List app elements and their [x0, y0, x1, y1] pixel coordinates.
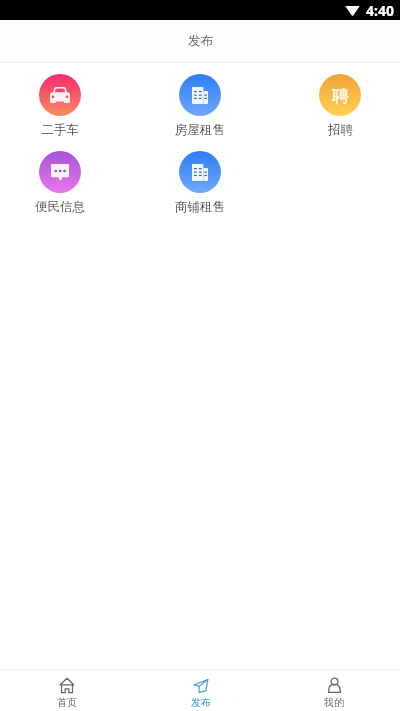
- staticText: 商铺租售: [175, 199, 225, 215]
- button[interactable]: 房屋租售: [150, 74, 250, 138]
- staticText: 二手车: [41, 122, 79, 138]
- button[interactable]: 商铺租售: [150, 151, 250, 215]
- staticText: 聘: [332, 86, 349, 107]
- staticText: 4:40: [366, 1, 394, 20]
- button[interactable]: 聘: [290, 74, 390, 138]
- staticText: 我的: [324, 696, 344, 709]
- staticText: 发布: [188, 33, 213, 49]
- staticText: 房屋租售: [175, 122, 225, 138]
- button[interactable]: 二手车: [10, 74, 110, 138]
- staticText: 首页: [57, 696, 77, 709]
- staticText: 招聘: [328, 122, 353, 138]
- button[interactable]: 首页 Home: [0, 674, 134, 709]
- button[interactable]: 便民信息: [10, 151, 110, 215]
- button[interactable]: 我的 Profile: [267, 674, 400, 709]
- staticText: 便民信息: [35, 199, 85, 215]
- staticText: 发布: [191, 696, 211, 709]
- button[interactable]: 发布 Publish: [134, 674, 267, 709]
